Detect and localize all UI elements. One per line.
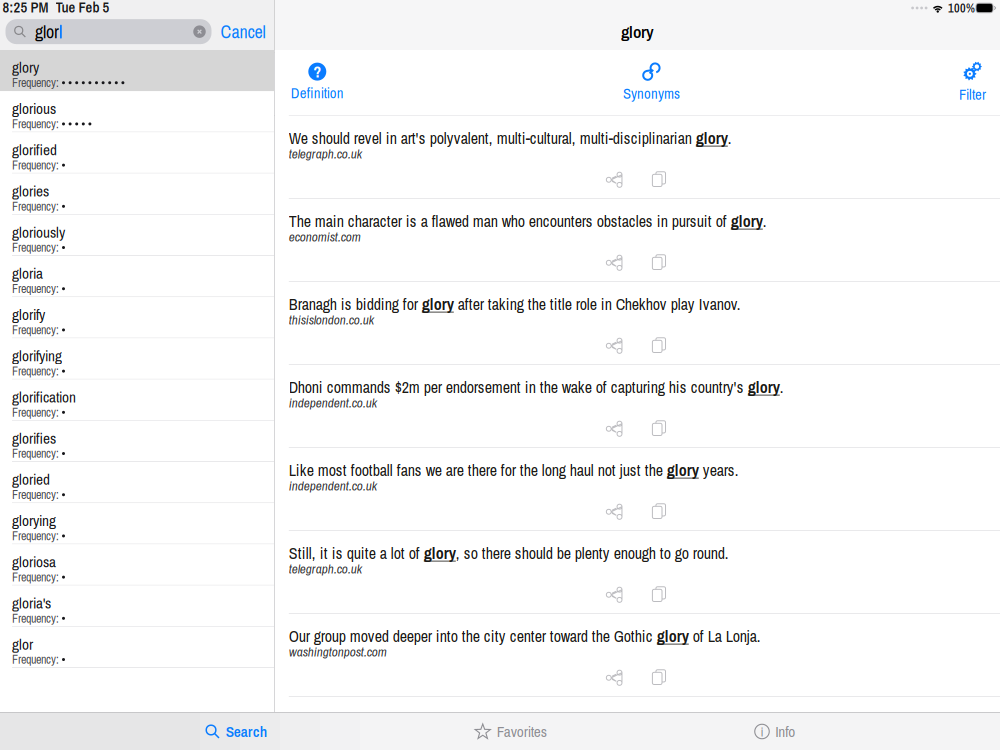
button[interactable]: glory [0, 50, 274, 91]
button[interactable]: gloried [0, 462, 274, 503]
button[interactable]: Search [205, 713, 267, 750]
staticText: Definition [291, 83, 344, 103]
button[interactable]: Share [591, 169, 637, 191]
staticText: Info [775, 721, 795, 742]
staticText: glorification [12, 387, 76, 407]
button[interactable]: glorious [0, 91, 274, 132]
button[interactable]: gloriosa [0, 544, 274, 586]
button[interactable]: Share [591, 418, 637, 440]
button[interactable]: Synonyms [623, 62, 680, 103]
button[interactable]: gloria [0, 256, 274, 297]
staticText: Frequency: [12, 239, 59, 256]
button[interactable]: ? [291, 62, 344, 103]
staticText: thisislondon.co.uk [289, 311, 374, 329]
button[interactable]: glorifies [0, 421, 274, 462]
button[interactable]: Share [591, 501, 637, 523]
button[interactable]: Clear search [188, 21, 210, 43]
staticText: glorious [12, 98, 56, 119]
staticText: We should revel in art's polyvalent, mul… [289, 128, 732, 149]
staticText: Still, it is quite a lot of glory, so th… [289, 543, 729, 564]
staticText: Our group moved deeper into the city cen… [289, 626, 761, 647]
button[interactable]: glories [0, 174, 274, 215]
button[interactable]: Copy [637, 335, 683, 357]
staticText: Frequency: [12, 445, 59, 462]
staticText: telegraph.co.uk [289, 560, 362, 578]
button[interactable]: glorified [0, 132, 274, 174]
button[interactable]: Share [591, 335, 637, 357]
button[interactable]: glorification [0, 380, 274, 421]
staticText: glorifying [12, 345, 62, 366]
staticText: gloriously [12, 222, 65, 242]
staticText: Synonyms [623, 84, 680, 103]
staticText: Frequency: [12, 322, 59, 338]
staticText: Branagh is bidding for glory after takin… [289, 294, 741, 315]
staticText: Like most football fans we are there for… [289, 460, 739, 481]
button[interactable]: gloria's [0, 586, 274, 627]
staticText: Frequency: [12, 528, 59, 544]
button[interactable]: Share [591, 667, 637, 689]
staticText: 8:25 PM [2, 0, 48, 17]
staticText: glorying [12, 510, 56, 531]
staticText: Frequency: [12, 157, 59, 173]
staticText: Filter [959, 85, 986, 104]
button[interactable]: glorying [0, 503, 274, 544]
staticText: independent.co.uk [289, 477, 377, 495]
staticText: Tue Feb 5 [55, 0, 109, 17]
staticText: Frequency: [12, 610, 59, 626]
staticText: glory [12, 57, 39, 78]
staticText: Frequency: [12, 569, 59, 585]
staticText: glorifies [12, 428, 56, 448]
staticText: glorify [12, 304, 45, 325]
button[interactable]: Copy [637, 418, 683, 440]
button[interactable]: Share [591, 584, 637, 606]
staticText: gloria's [12, 593, 51, 613]
staticText: Frequency: [12, 363, 59, 379]
button[interactable]: Filter [959, 61, 986, 104]
staticText: Frequency: [12, 281, 59, 297]
staticText: The main character is a flawed man who e… [289, 211, 767, 232]
staticText: Search [226, 721, 267, 742]
button[interactable]: Copy [637, 169, 683, 191]
staticText: Frequency: [12, 198, 59, 214]
staticText: gloriosa [12, 551, 56, 572]
button[interactable]: Favorites [475, 713, 547, 750]
button[interactable]: i [755, 713, 795, 750]
staticText: Dhoni commands $2m per endorsement in th… [289, 377, 784, 398]
staticText: economist.com [289, 228, 361, 246]
staticText: telegraph.co.uk [289, 145, 362, 163]
staticText: Frequency: [12, 651, 59, 668]
button[interactable]: Copy [637, 584, 683, 606]
staticText: ? [313, 61, 321, 82]
staticText: 100% [948, 0, 975, 16]
staticText: glorified [12, 139, 57, 160]
button[interactable]: Share [591, 252, 637, 274]
staticText: Frequency: [12, 404, 59, 420]
staticText: Frequency: [12, 75, 59, 91]
staticText: Favorites [497, 721, 547, 742]
staticText: washingtonpost.com [289, 643, 387, 661]
staticText: gloried [12, 469, 50, 490]
staticText: Frequency: [12, 116, 59, 132]
staticText: Frequency: [12, 487, 59, 503]
button[interactable]: gloriously [0, 215, 274, 256]
staticText: glories [12, 181, 49, 201]
staticText: glor [12, 634, 33, 654]
staticText: glory [621, 20, 654, 43]
staticText: i [760, 722, 763, 741]
staticText: gloria [12, 263, 43, 284]
button[interactable]: Copy [637, 252, 683, 274]
button[interactable]: Copy [637, 667, 683, 689]
staticText: independent.co.uk [289, 394, 377, 412]
button[interactable]: Cancel [211, 19, 271, 44]
button[interactable]: glorifying [0, 338, 274, 380]
staticText: Cancel [220, 19, 265, 44]
button[interactable]: glor [0, 627, 274, 668]
button[interactable]: Copy [637, 501, 683, 523]
staticText: glor [35, 19, 59, 44]
button[interactable]: glorify [0, 297, 274, 338]
